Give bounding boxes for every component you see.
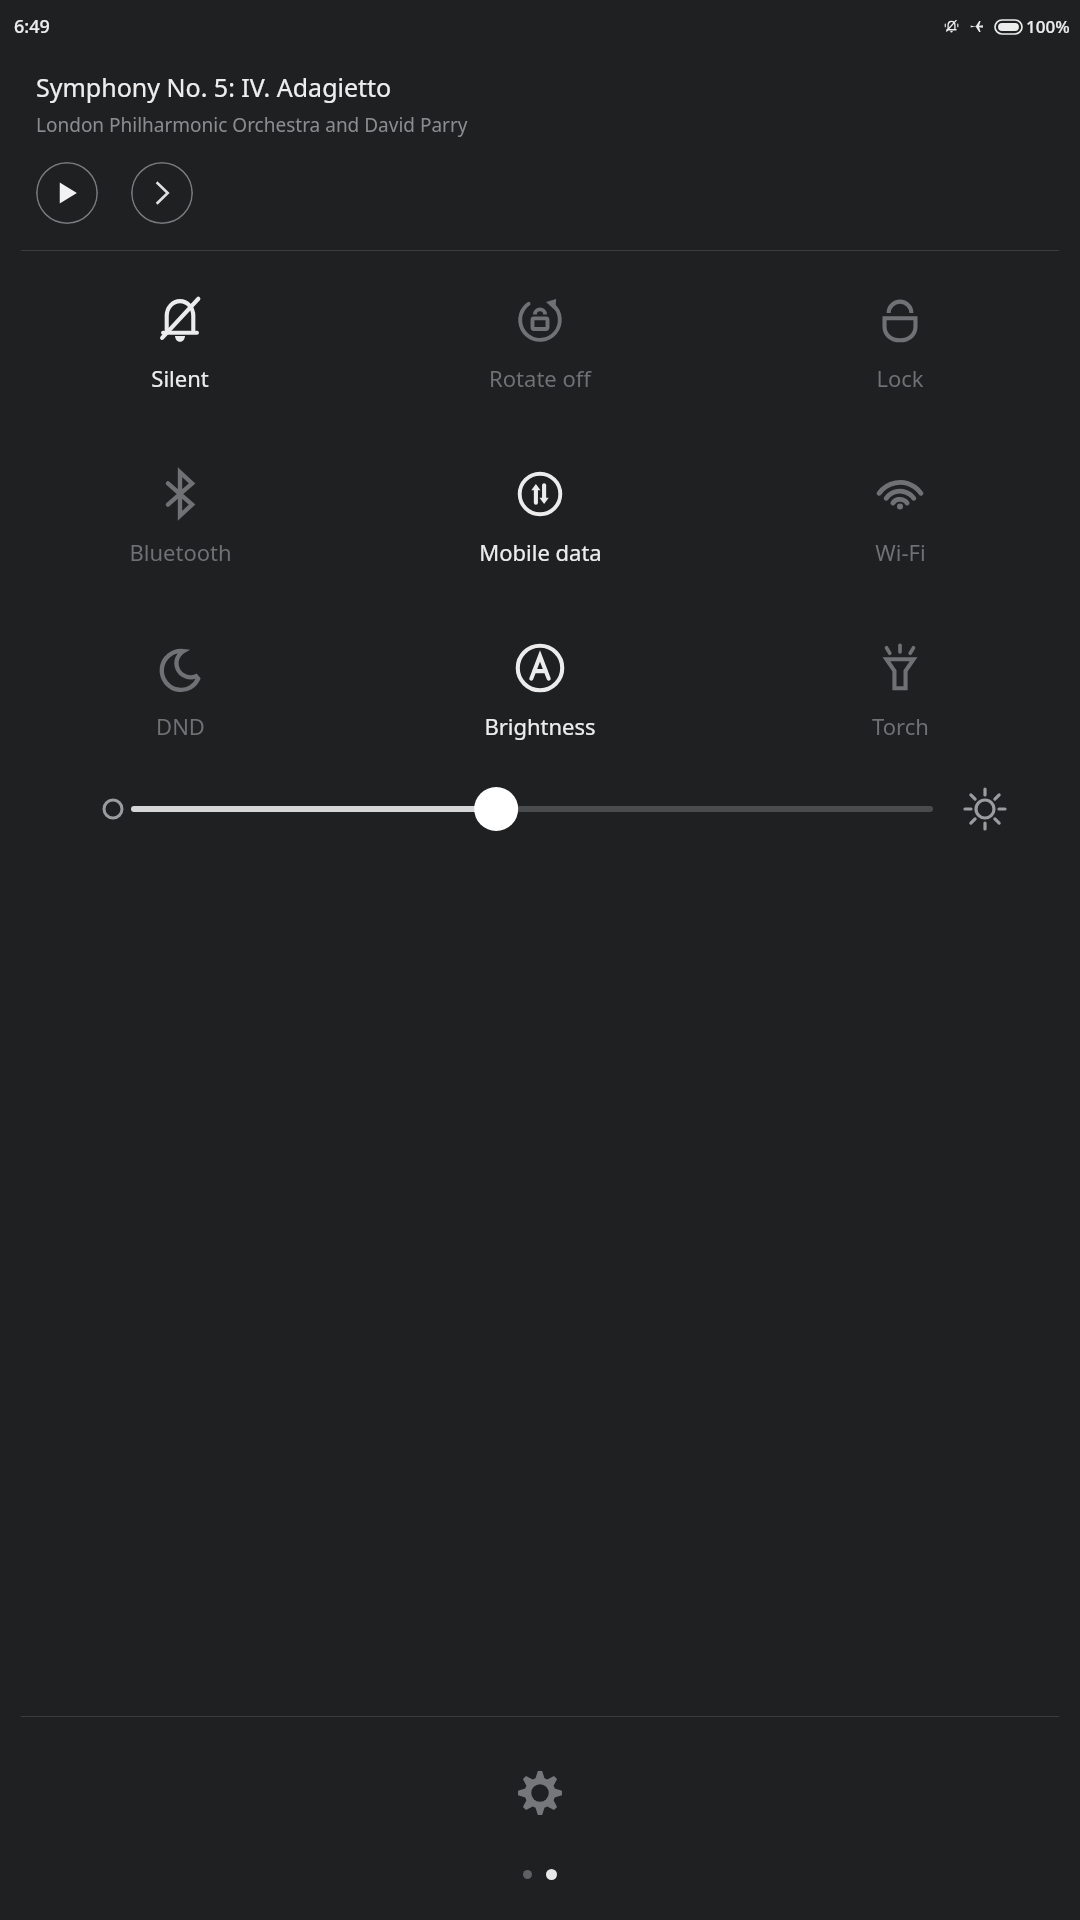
button[interactable]: Next [131,162,193,224]
staticText: London Philharmonic Orchestra and David … [36,112,468,138]
staticText: Symphony No. 5: IV. Adagietto [36,70,392,104]
button[interactable]: Torch [720,633,1080,747]
staticText: Lock [876,363,924,393]
button[interactable]: Wi-Fi [720,459,1080,573]
button[interactable]: DND [0,633,360,747]
staticText: Silent [151,363,209,393]
button[interactable]: Play [36,162,98,224]
button[interactable]: Mobile data [360,459,720,573]
staticText: Brightness [484,711,596,741]
button[interactable]: Silent [0,285,360,399]
button[interactable]: Settings [500,1753,580,1833]
staticText: DND [156,711,205,741]
staticText: Torch [872,711,929,741]
button[interactable]: Lock [720,285,1080,399]
staticText: 6:49 [14,14,50,39]
staticText: Rotate off [489,363,591,393]
button[interactable]: Bluetooth [0,459,360,573]
staticText: Mobile data [479,537,602,567]
button[interactable]: Brightness slider [0,761,1080,857]
button[interactable]: Rotate off [360,285,720,399]
staticText: Bluetooth [129,537,232,567]
button[interactable]: Brightness [360,633,720,747]
staticText: 100% [1026,15,1070,38]
staticText: Wi-Fi [875,537,926,567]
